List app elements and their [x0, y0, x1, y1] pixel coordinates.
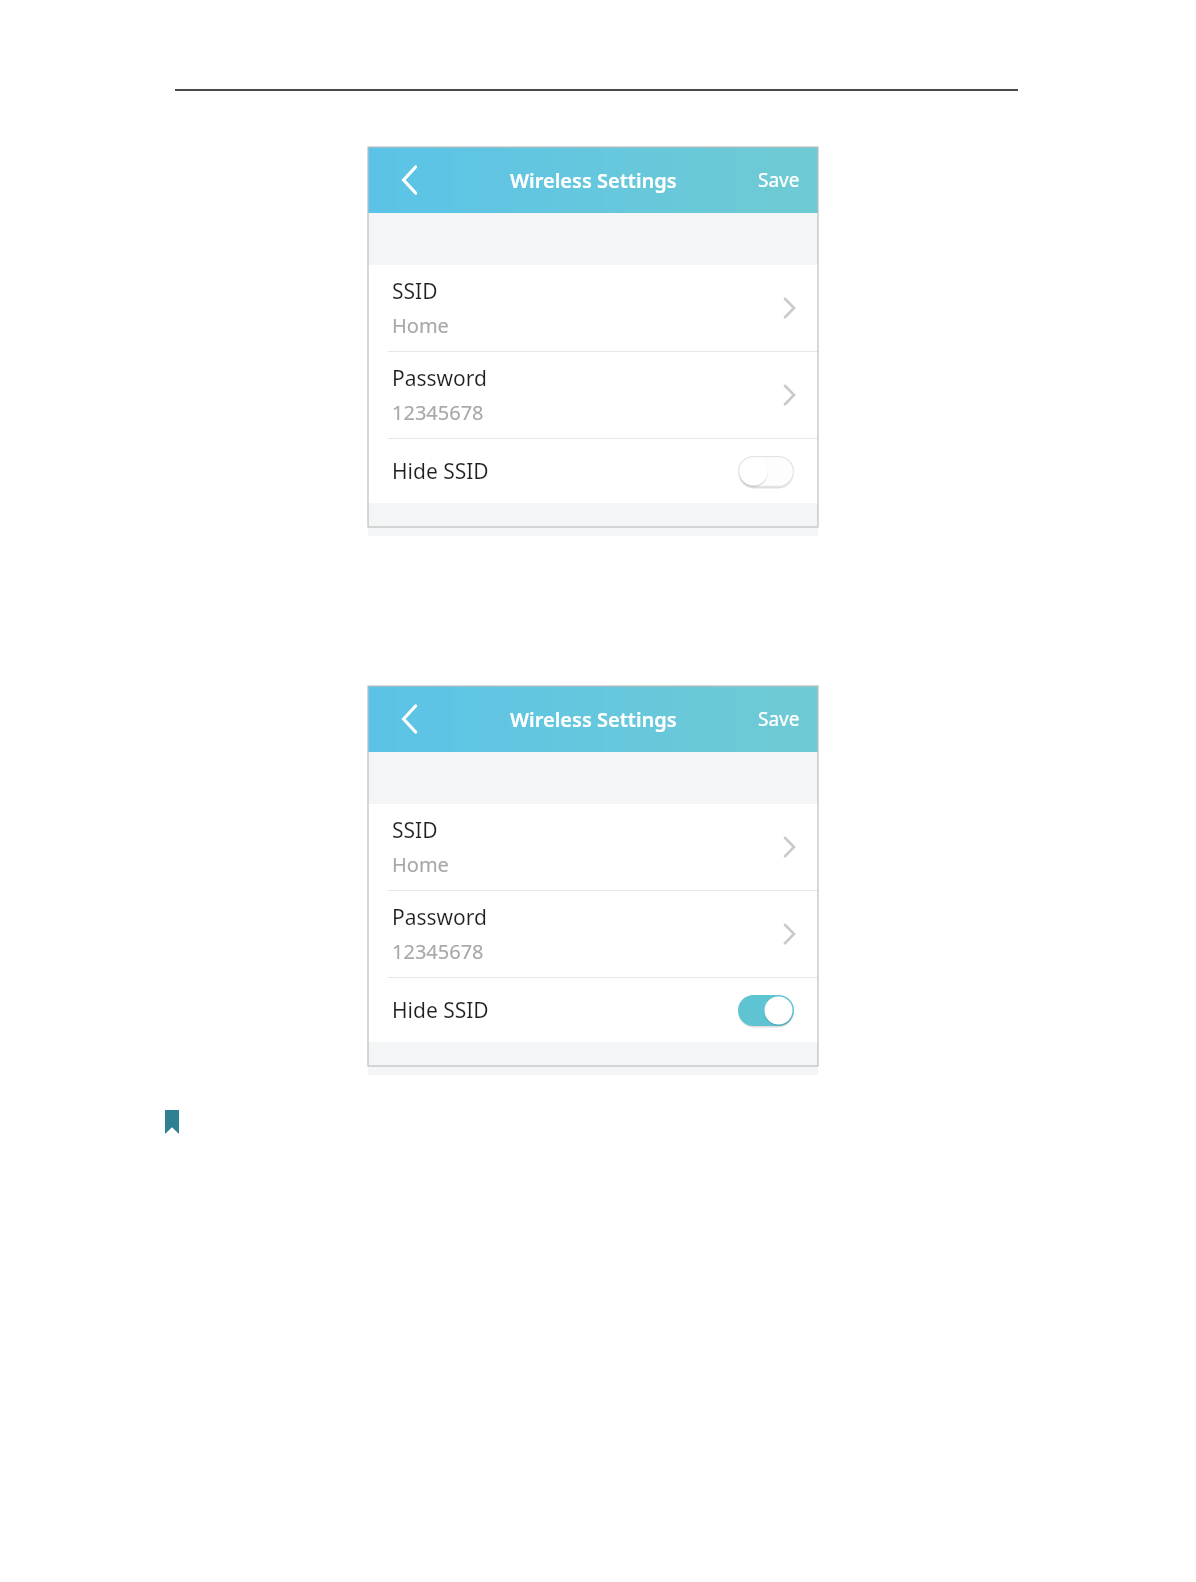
staticText: SSID: [392, 277, 438, 306]
button[interactable]: Password: [368, 352, 818, 438]
button[interactable]: Back: [388, 697, 432, 741]
button[interactable]: Save: [740, 155, 818, 205]
staticText: Home: [392, 851, 449, 878]
button[interactable]: Save: [740, 694, 818, 744]
staticText: Hide SSID: [392, 457, 738, 486]
button[interactable]: Back: [388, 158, 432, 202]
staticText: Wireless Settings: [510, 167, 677, 194]
button[interactable]: Password: [368, 891, 818, 977]
button[interactable]: Hide SSID toggle: [738, 456, 794, 487]
staticText: Save: [758, 167, 800, 193]
staticText: Hide SSID: [392, 996, 738, 1025]
button[interactable]: Hide SSID toggle: [738, 995, 794, 1026]
button[interactable]: Hide SSID: [368, 439, 818, 503]
staticText: Save: [758, 706, 800, 732]
button[interactable]: SSID: [368, 265, 818, 351]
button[interactable]: Hide SSID: [368, 978, 818, 1042]
staticText: Wireless Settings: [510, 706, 677, 733]
staticText: 12345678: [392, 399, 484, 426]
staticText: Home: [392, 312, 449, 339]
staticText: Password: [392, 903, 487, 932]
staticText: SSID: [392, 816, 438, 845]
staticText: 12345678: [392, 938, 484, 965]
button[interactable]: SSID: [368, 804, 818, 890]
staticText: Password: [392, 364, 487, 393]
